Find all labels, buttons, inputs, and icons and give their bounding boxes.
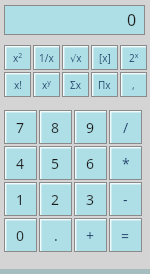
button[interactable]: 0	[5, 219, 36, 251]
button[interactable]: reciprocal	[34, 46, 59, 69]
button[interactable]: x to the y	[34, 73, 59, 96]
button[interactable]: 4	[5, 147, 36, 179]
staticText: ,	[132, 78, 135, 92]
staticText: 0	[127, 9, 137, 31]
staticText: 0	[16, 226, 25, 245]
staticText: 5	[51, 154, 60, 173]
staticText: Σx	[70, 78, 82, 92]
staticText: 4	[16, 154, 25, 173]
button[interactable]: comma	[121, 73, 146, 96]
button[interactable]: 6	[75, 147, 106, 179]
staticText: 3	[86, 190, 95, 209]
button[interactable]: x squared	[5, 46, 30, 69]
button[interactable]: two to the x	[121, 46, 146, 69]
button[interactable]: product	[92, 73, 117, 96]
staticText: √x	[70, 51, 82, 65]
staticText: 6	[86, 154, 95, 173]
button[interactable]: .	[40, 219, 71, 251]
staticText: x2	[13, 51, 23, 65]
staticText: /	[123, 118, 129, 137]
staticText: [x]	[99, 51, 111, 65]
staticText: 1/x	[39, 51, 54, 65]
staticText: =	[121, 226, 130, 245]
button[interactable]: square root	[63, 46, 88, 69]
button[interactable]: multiply	[110, 147, 141, 179]
button[interactable]: Display showing 0	[5, 6, 144, 34]
staticText: +	[86, 226, 95, 245]
button[interactable]: 7	[5, 111, 36, 143]
button[interactable]: factorial	[5, 73, 30, 96]
button[interactable]: sum	[63, 73, 88, 96]
staticText: -	[123, 190, 128, 209]
button[interactable]: 8	[40, 111, 71, 143]
staticText: xy	[42, 78, 51, 92]
button[interactable]: integer part	[92, 46, 117, 69]
staticText: 1	[16, 190, 25, 209]
staticText: 2x	[129, 51, 139, 65]
staticText: 8	[51, 118, 60, 137]
button[interactable]: 9	[75, 111, 106, 143]
staticText: Πx	[98, 78, 111, 92]
staticText: 9	[86, 118, 95, 137]
button[interactable]: divide	[110, 111, 141, 143]
button[interactable]: 5	[40, 147, 71, 179]
staticText: x!	[14, 78, 22, 92]
button[interactable]: add	[75, 219, 106, 251]
staticText: 2	[51, 190, 60, 209]
staticText: *	[122, 154, 130, 173]
button[interactable]: equals	[110, 219, 141, 251]
staticText: .	[54, 226, 58, 245]
button[interactable]: 2	[40, 183, 71, 215]
button[interactable]: 3	[75, 183, 106, 215]
button[interactable]: subtract	[110, 183, 141, 215]
button[interactable]: 1	[5, 183, 36, 215]
staticText: 7	[16, 118, 25, 137]
